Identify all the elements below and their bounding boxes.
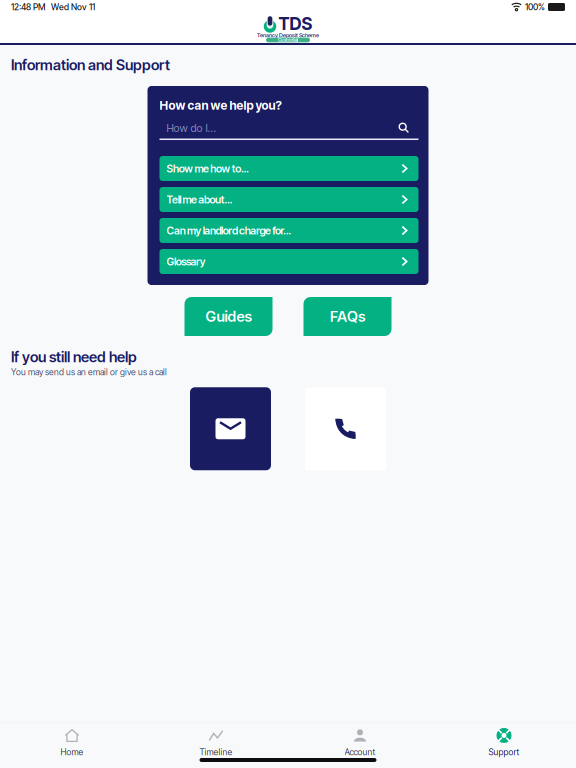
staticText: Show me how to... bbox=[166, 162, 249, 175]
button[interactable]: Show me how to... bbox=[159, 156, 418, 181]
button[interactable]: Home bbox=[0, 726, 144, 760]
staticText: Can my landlord charge for... bbox=[166, 224, 291, 237]
staticText: Custodial bbox=[278, 37, 298, 43]
button[interactable]: Support bbox=[432, 726, 576, 760]
staticText: FAQs bbox=[330, 308, 365, 325]
staticText: Account bbox=[344, 747, 375, 757]
staticText: 100% bbox=[525, 2, 545, 12]
staticText: Timeline bbox=[199, 747, 232, 757]
staticText: Information and Support bbox=[11, 56, 170, 74]
staticText: Glossary bbox=[166, 255, 206, 268]
button[interactable]: Guides bbox=[184, 297, 272, 336]
button[interactable]: Glossary bbox=[159, 249, 418, 274]
staticText: Support bbox=[488, 747, 519, 757]
button[interactable]: Account bbox=[288, 726, 432, 760]
button[interactable]: Timeline bbox=[144, 726, 288, 760]
button[interactable]: Email us bbox=[190, 387, 271, 470]
staticText: Tenancy Deposit Scheme bbox=[257, 32, 319, 39]
button[interactable]: Tell me about... bbox=[159, 187, 418, 212]
staticText: You may send us an email or give us a ca… bbox=[11, 367, 167, 377]
staticText: 12:48 PM Wed Nov 11 bbox=[11, 2, 95, 12]
staticText: Guides bbox=[205, 308, 251, 325]
staticText: Home bbox=[60, 747, 83, 757]
button[interactable]: Can my landlord charge for... bbox=[159, 218, 418, 243]
staticText: TDS bbox=[278, 13, 312, 34]
staticText: How do I... bbox=[166, 122, 216, 134]
button[interactable]: Call us bbox=[305, 387, 386, 470]
staticText: How can we help you? bbox=[159, 98, 281, 112]
staticText: If you still need help bbox=[11, 348, 137, 366]
button[interactable]: FAQs bbox=[303, 297, 391, 336]
staticText: Tell me about... bbox=[166, 193, 232, 206]
